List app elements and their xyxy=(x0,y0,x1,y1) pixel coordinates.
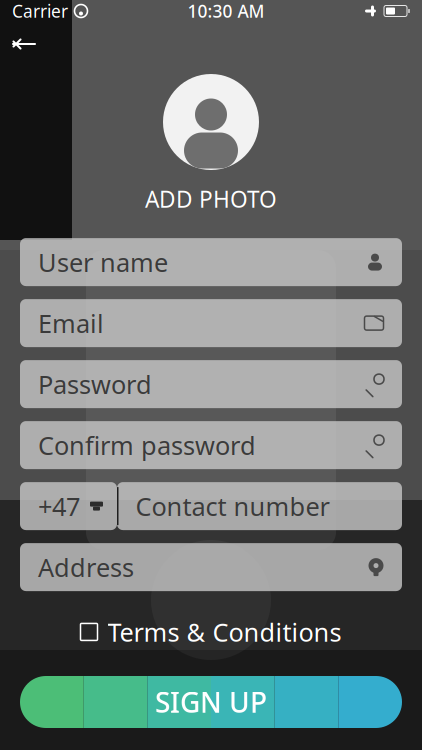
button[interactable]: ADD PHOTO xyxy=(145,74,277,214)
button[interactable]: User name xyxy=(20,238,402,286)
staticText: Confirm password xyxy=(38,428,256,462)
staticText: Contact number xyxy=(135,489,329,523)
staticText: SIGN UP xyxy=(155,683,267,721)
staticText: +47 xyxy=(38,489,80,523)
button[interactable]: Terms & Conditions xyxy=(70,609,351,655)
staticText: User name xyxy=(38,245,168,279)
staticText: Password xyxy=(38,367,152,401)
button[interactable]: Password xyxy=(20,360,402,408)
staticText: Terms & Conditions xyxy=(107,615,341,649)
staticText: ADD PHOTO xyxy=(145,184,277,214)
button[interactable]: Back xyxy=(2,22,46,66)
staticText: 10:30 AM xyxy=(187,0,264,22)
staticText: Email xyxy=(38,306,104,340)
button[interactable]: SIGN UP xyxy=(20,676,402,728)
button[interactable]: Address xyxy=(20,543,402,591)
staticText: Carrier xyxy=(12,0,68,22)
button[interactable]: Email xyxy=(20,299,402,347)
button[interactable]: Confirm password xyxy=(20,421,402,469)
button[interactable]: Contact number xyxy=(117,482,402,530)
button[interactable]: +47 xyxy=(20,482,117,530)
staticText: Address xyxy=(38,550,134,584)
